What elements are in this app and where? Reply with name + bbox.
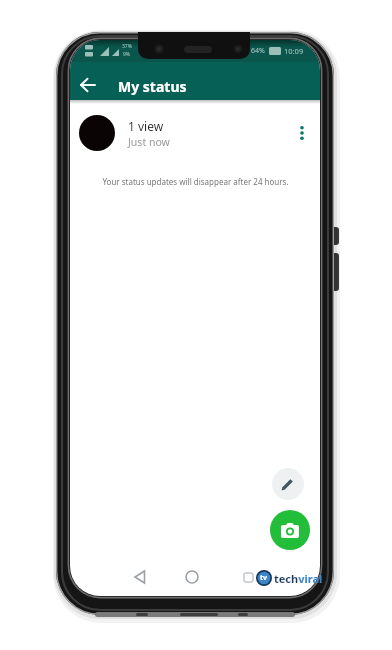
button[interactable]: 1 view	[70, 108, 320, 158]
staticText: Your status updates will disappear after…	[102, 176, 289, 187]
staticText: 10:09	[284, 46, 304, 56]
staticText: 64%	[251, 46, 265, 56]
staticText: Just now	[128, 135, 170, 149]
button[interactable]	[232, 561, 264, 593]
button[interactable]	[72, 69, 104, 101]
button[interactable]	[124, 561, 156, 593]
button[interactable]	[272, 468, 304, 500]
staticText: 37%	[122, 43, 132, 50]
button[interactable]	[288, 116, 316, 150]
button[interactable]	[176, 561, 208, 593]
button[interactable]	[270, 510, 310, 550]
staticText: techviral	[274, 571, 323, 586]
staticText: tv	[260, 573, 268, 583]
staticText: 1 view	[128, 118, 164, 134]
staticText: 9%	[123, 51, 131, 58]
staticText: My status	[118, 77, 187, 96]
